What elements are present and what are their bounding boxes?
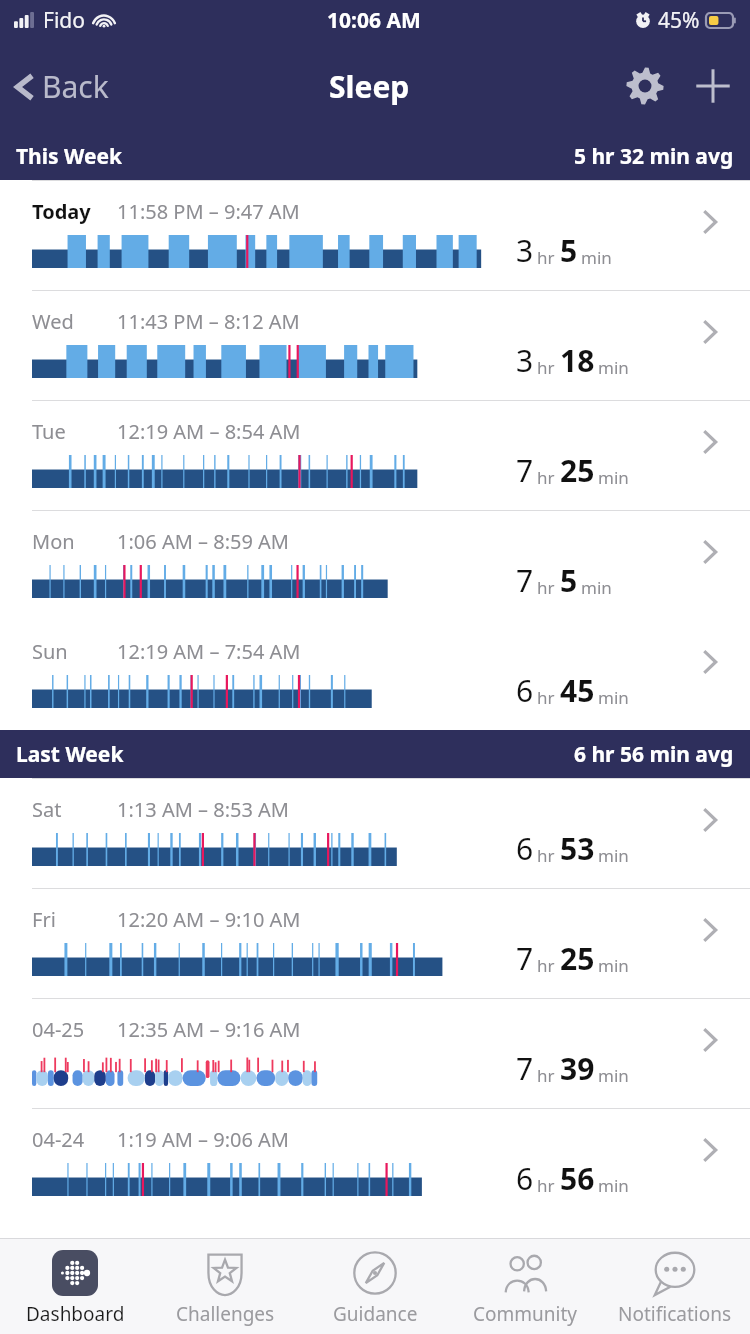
staticText: 04-25	[32, 1016, 85, 1043]
button[interactable]: Fri	[0, 888, 750, 998]
staticText: hr	[537, 954, 555, 977]
staticText: Fri	[32, 906, 56, 933]
staticText: hr	[537, 466, 555, 489]
staticText: 7	[516, 450, 534, 491]
staticText: hr	[537, 844, 555, 867]
staticText: Mon	[32, 528, 75, 555]
staticText: Dashboard	[26, 1301, 125, 1327]
button[interactable]: Add	[684, 57, 750, 115]
button[interactable]: Tue	[0, 400, 750, 510]
staticText: 45	[560, 670, 595, 711]
button[interactable]: Dashboard	[0, 1239, 150, 1334]
button[interactable]: Settings	[616, 57, 674, 115]
staticText: 7	[516, 1048, 534, 1089]
staticText: 6 hr 56 min avg	[574, 740, 734, 769]
staticText: 6	[516, 670, 534, 711]
button[interactable]: Challenges	[150, 1239, 300, 1334]
staticText: 1:13 AM – 8:53 AM	[117, 796, 289, 823]
staticText: min	[598, 356, 629, 379]
staticText: 18	[560, 340, 595, 381]
staticText: hr	[537, 576, 555, 599]
staticText: hr	[537, 1174, 555, 1197]
staticText: 3	[516, 340, 534, 381]
staticText: 56	[560, 1158, 595, 1199]
staticText: min	[598, 466, 629, 489]
staticText: min	[598, 844, 629, 867]
staticText: 25	[560, 450, 595, 491]
button[interactable]: 04-24	[0, 1108, 750, 1218]
staticText: 6	[516, 1158, 534, 1199]
staticText: hr	[537, 246, 555, 269]
staticText: min	[598, 954, 629, 977]
button[interactable]: Sun	[0, 620, 750, 730]
staticText: 5 hr 32 min avg	[574, 142, 734, 171]
staticText: hr	[537, 686, 555, 709]
staticText: 6	[516, 828, 534, 869]
staticText: Today	[32, 198, 91, 225]
staticText: Community	[473, 1301, 577, 1327]
staticText: 53	[560, 828, 595, 869]
button[interactable]: 04-25	[0, 998, 750, 1108]
staticText: 5	[560, 230, 578, 271]
button[interactable]: Wed	[0, 290, 750, 400]
staticText: 39	[560, 1048, 595, 1089]
button[interactable]: Notifications	[600, 1239, 750, 1334]
staticText: Back	[42, 66, 109, 107]
staticText: 12:19 AM – 8:54 AM	[117, 418, 301, 445]
staticText: 5	[560, 560, 578, 601]
staticText: This Week	[16, 142, 123, 171]
staticText: 25	[560, 938, 595, 979]
button[interactable]: Today	[0, 180, 750, 290]
button[interactable]: Mon	[0, 510, 750, 620]
staticText: 10:06 AM	[327, 6, 421, 35]
staticText: hr	[537, 1064, 555, 1087]
staticText: min	[598, 1174, 629, 1197]
staticText: 7	[516, 560, 534, 601]
staticText: Fido	[43, 6, 85, 35]
staticText: min	[581, 576, 612, 599]
staticText: 11:43 PM – 8:12 AM	[117, 308, 300, 335]
staticText: Notifications	[618, 1301, 732, 1327]
staticText: 1:19 AM – 9:06 AM	[117, 1126, 289, 1153]
staticText: 04-24	[32, 1126, 85, 1153]
staticText: Tue	[32, 418, 66, 445]
staticText: 45%	[658, 6, 700, 35]
staticText: Sleep	[329, 66, 410, 107]
staticText: Last Week	[16, 740, 124, 769]
button[interactable]: Guidance	[300, 1239, 450, 1334]
staticText: 12:20 AM – 9:10 AM	[117, 906, 301, 933]
staticText: min	[598, 686, 629, 709]
staticText: min	[598, 1064, 629, 1087]
staticText: Sun	[32, 638, 68, 665]
button[interactable]: Community	[450, 1239, 600, 1334]
staticText: 11:58 PM – 9:47 AM	[117, 198, 300, 225]
staticText: 12:35 AM – 9:16 AM	[117, 1016, 301, 1043]
staticText: 7	[516, 938, 534, 979]
staticText: Wed	[32, 308, 74, 335]
staticText: 3	[516, 230, 534, 271]
staticText: 1:06 AM – 8:59 AM	[117, 528, 289, 555]
button[interactable]: Sat	[0, 778, 750, 888]
staticText: 12:19 AM – 7:54 AM	[117, 638, 301, 665]
staticText: Challenges	[176, 1301, 275, 1327]
staticText: Sat	[32, 796, 62, 823]
button[interactable]: Back	[0, 56, 123, 117]
staticText: min	[581, 246, 612, 269]
staticText: Guidance	[333, 1301, 418, 1327]
staticText: hr	[537, 356, 555, 379]
